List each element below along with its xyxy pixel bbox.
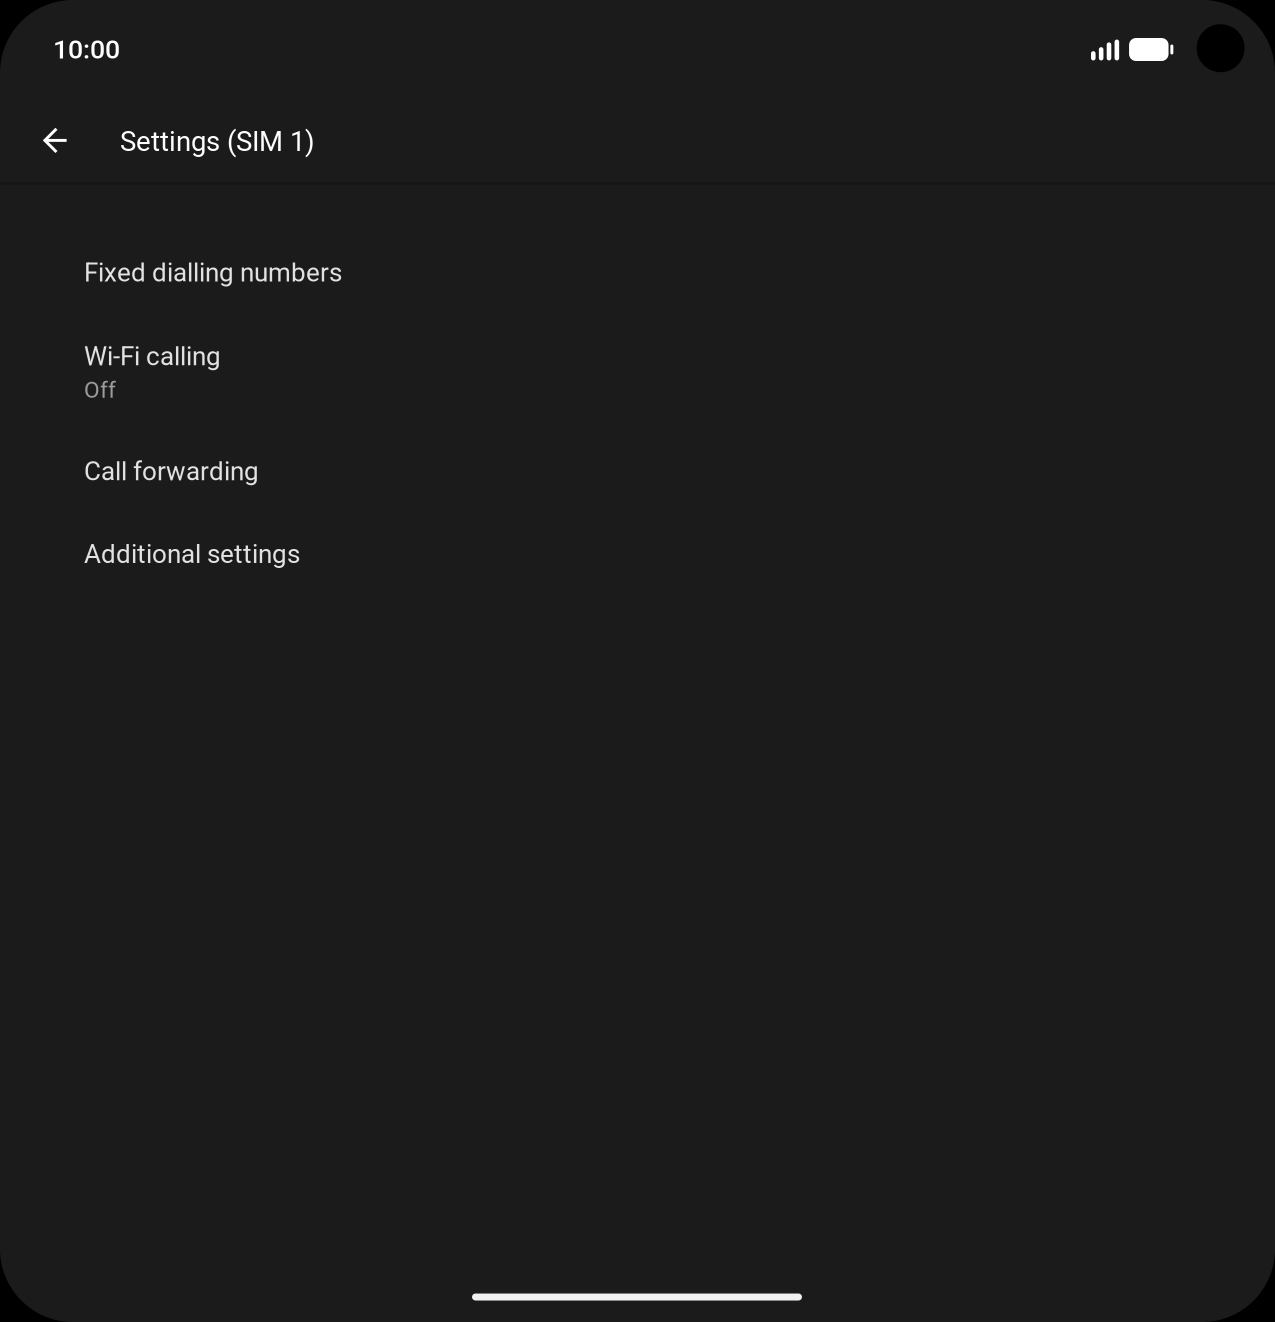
staticText: Call forwarding: [84, 456, 259, 487]
staticText: Additional settings: [84, 539, 300, 569]
button[interactable]: Back: [11, 96, 99, 184]
staticText: Off: [84, 377, 116, 403]
staticText: Fixed dialling numbers: [84, 257, 342, 288]
button[interactable]: Fixed dialling numbers: [0, 231, 1275, 314]
button[interactable]: Additional settings: [0, 512, 1275, 595]
staticText: Settings (SIM 1): [120, 125, 315, 158]
button[interactable]: Call forwarding: [0, 429, 1275, 512]
button[interactable]: Wi-Fi calling: [0, 314, 1275, 429]
staticText: Wi-Fi calling: [84, 341, 221, 372]
staticText: 10:00: [53, 34, 120, 65]
